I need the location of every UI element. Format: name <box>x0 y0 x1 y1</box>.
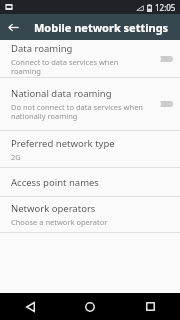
staticText: Preferred network type <box>11 137 115 150</box>
button[interactable]: Toggle <box>148 51 174 67</box>
staticText: Do not connect to data services when nat… <box>11 102 143 121</box>
staticText: Connect to data services when roaming <box>11 57 144 76</box>
staticText: Access point names <box>11 176 99 189</box>
button[interactable]: Data roaming <box>0 40 180 77</box>
button[interactable]: Access point names <box>0 168 180 196</box>
button[interactable]: Recent apps <box>120 293 180 320</box>
button[interactable]: Toggle <box>148 96 174 112</box>
button[interactable]: Preferred network type <box>0 131 180 167</box>
button[interactable]: Back <box>0 14 26 40</box>
staticText: Mobile network settings <box>34 20 169 35</box>
staticText: Choose a network operator <box>11 217 108 227</box>
staticText: 2G <box>11 152 21 162</box>
button[interactable]: Network operators <box>0 197 180 232</box>
staticText: Data roaming <box>11 42 73 55</box>
staticText: 12:05 <box>155 2 176 13</box>
button[interactable]: Back <box>0 293 60 320</box>
staticText: National data roaming <box>11 87 112 100</box>
button[interactable]: Home <box>60 293 120 320</box>
button[interactable]: National data roaming <box>0 78 180 130</box>
staticText: Network operators <box>11 202 96 215</box>
